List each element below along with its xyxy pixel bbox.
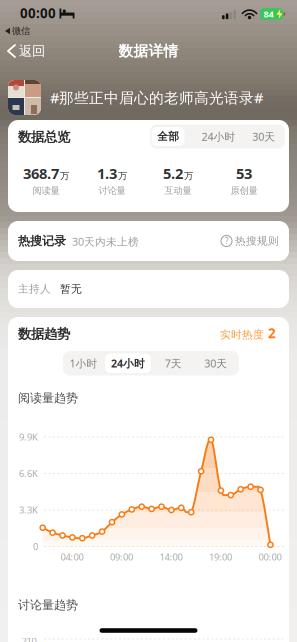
staticText: 万 — [184, 170, 193, 182]
staticText: 14:00 — [159, 551, 182, 563]
button[interactable]: 7天 — [154, 351, 192, 375]
staticText: 24小时 — [111, 356, 145, 370]
staticText: 30天 — [252, 129, 275, 144]
staticText: 30天内未上榜 — [72, 234, 139, 249]
staticText: 3.3K — [19, 504, 38, 516]
staticText: 2 — [268, 324, 276, 342]
staticText: 00:00 — [20, 4, 56, 22]
staticText: 微信 — [12, 25, 30, 37]
staticText: 7天 — [165, 356, 182, 370]
staticText: 30天 — [204, 356, 227, 370]
button[interactable]: 30天 — [193, 351, 239, 375]
staticText: 数据总览 — [18, 129, 70, 145]
staticText: 实时热度 — [220, 328, 264, 341]
staticText: 210 — [21, 635, 36, 642]
staticText: 原创量 — [230, 185, 257, 196]
button[interactable]: 返回 — [8, 43, 45, 59]
staticText: ? — [225, 236, 228, 246]
staticText: 19:00 — [209, 551, 232, 563]
staticText: 00:00 — [258, 551, 281, 563]
staticText: 互动量 — [164, 185, 191, 196]
button[interactable]: #那些正中眉心的老师高光语录# — [8, 80, 263, 115]
staticText: 数据趋势 — [18, 326, 70, 342]
staticText: 1小时 — [70, 356, 98, 370]
button[interactable]: 30天 — [241, 124, 286, 148]
staticText: 讨论量趋势 — [18, 598, 78, 612]
staticText: 53 — [236, 163, 252, 183]
staticText: 04:00 — [60, 551, 83, 563]
button[interactable]: 全部 — [150, 124, 187, 148]
staticText: 讨论量 — [98, 185, 125, 196]
staticText: 24小时 — [201, 129, 235, 144]
staticText: 万 — [118, 170, 127, 182]
button[interactable]: 24小时 — [193, 124, 243, 148]
staticText: 0 — [33, 540, 38, 553]
staticText: 84 — [263, 8, 273, 20]
staticText: 9.9K — [19, 431, 38, 443]
staticText: 全部 — [157, 130, 179, 143]
staticText: 阅读量 — [32, 185, 59, 196]
staticText: 数据详情 — [118, 42, 178, 60]
button[interactable]: ? — [221, 234, 279, 247]
staticText: 1.3 — [97, 163, 117, 183]
staticText: 6.6K — [19, 467, 38, 480]
staticText: 368.7 — [23, 163, 59, 183]
staticText: 热搜记录 — [18, 234, 66, 248]
button[interactable]: 24小时 — [105, 351, 151, 375]
staticText: 热搜规则 — [235, 234, 279, 247]
button[interactable]: 1小时 — [64, 351, 104, 375]
staticText: 万 — [60, 170, 69, 182]
staticText: 阅读量趋势 — [18, 391, 78, 405]
staticText: 09:00 — [110, 551, 133, 563]
staticText: 暂无 — [60, 282, 82, 295]
button[interactable]: 返回微信 — [5, 25, 30, 37]
staticText: 主持人 — [18, 282, 51, 295]
staticText: 5.2 — [163, 163, 183, 183]
staticText: 返回 — [19, 43, 45, 59]
staticText: #那些正中眉心的老师高光语录# — [50, 88, 263, 107]
